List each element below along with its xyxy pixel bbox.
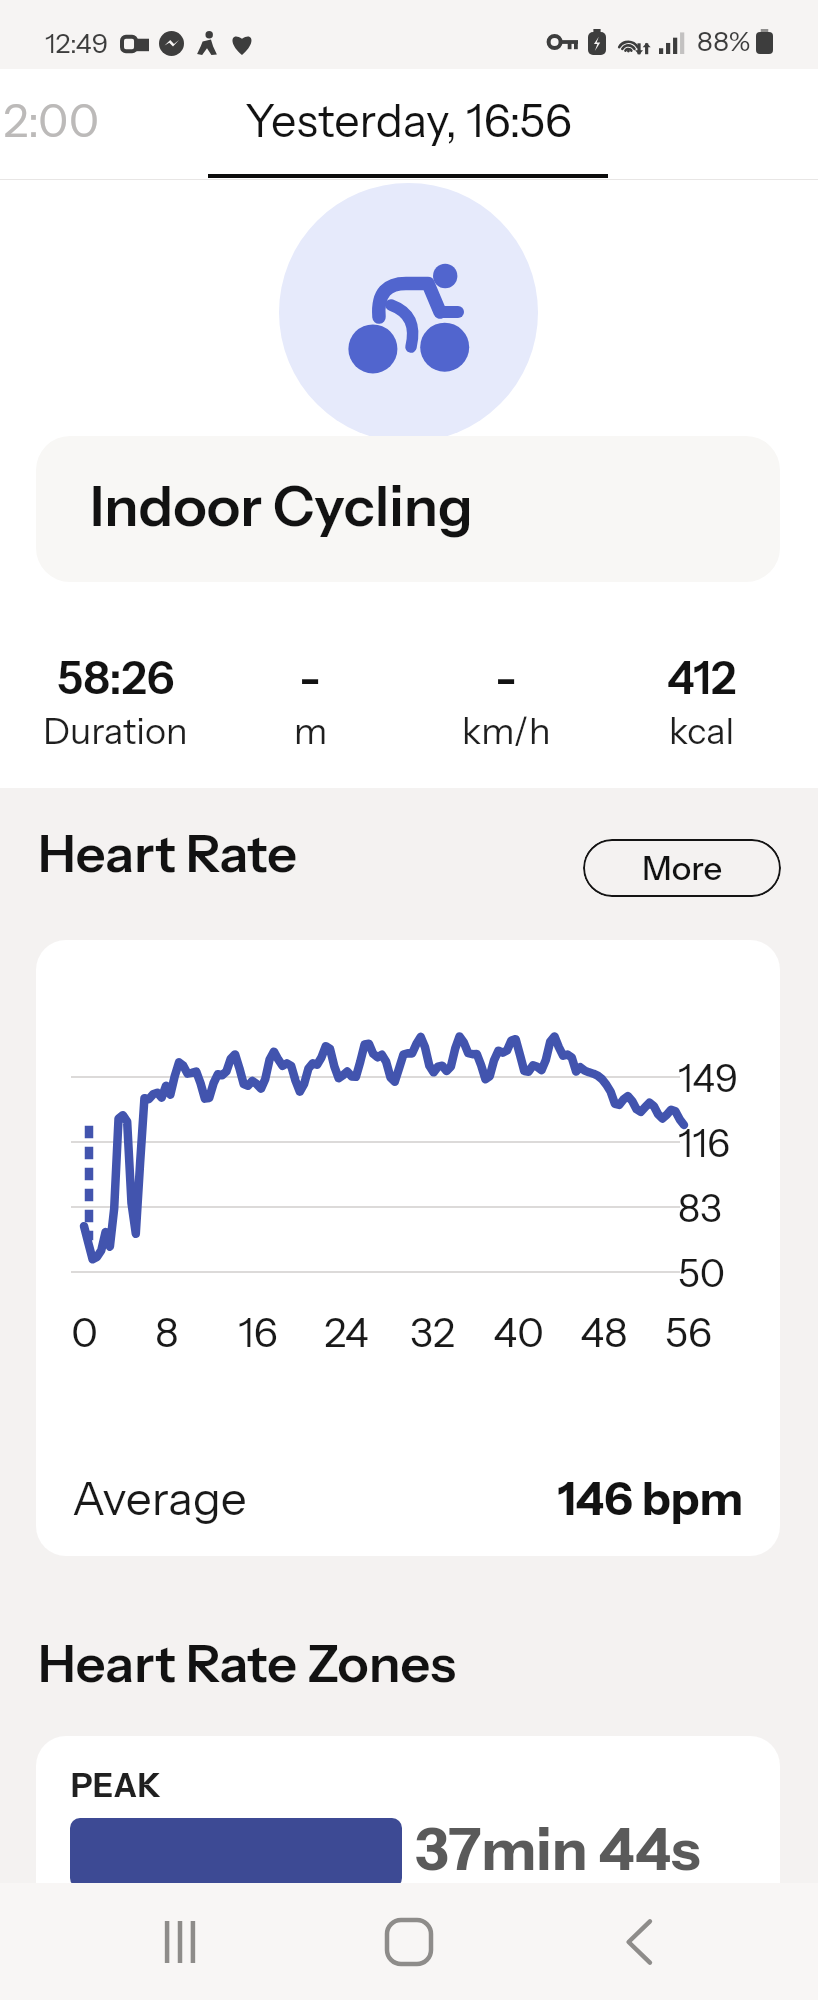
staticText: 40 [493, 1308, 544, 1357]
button[interactable]: Indoor Cycling [36, 436, 780, 582]
staticText: 88% [697, 25, 751, 58]
staticText: 58:26 [57, 650, 175, 705]
staticText: 83 [678, 1185, 722, 1231]
staticText: Heart Rate [38, 822, 297, 885]
staticText: 37min 44s [415, 1814, 701, 1885]
staticText: Heart Rate Zones [38, 1632, 457, 1695]
staticText: 32 [410, 1308, 455, 1357]
staticText: 116 [678, 1120, 731, 1166]
staticText: 56 [665, 1308, 712, 1357]
button[interactable]: Recent apps [130, 1892, 230, 1992]
staticText: Yesterday, 16:56 [245, 93, 572, 148]
button[interactable]: - [213, 650, 408, 753]
staticText: 412 [667, 650, 737, 705]
staticText: 149 [678, 1055, 739, 1101]
staticText: 24 [324, 1308, 369, 1357]
staticText: Average [72, 1470, 247, 1526]
button[interactable]: Yesterday, 16:56 [208, 84, 608, 178]
staticText: PEAK [71, 1766, 162, 1805]
staticText: Duration [43, 709, 188, 753]
button[interactable]: - [408, 650, 604, 753]
staticText: 16 [238, 1308, 278, 1357]
staticText: 0 [71, 1308, 98, 1357]
button[interactable]: More [583, 839, 781, 897]
staticText: m [294, 709, 328, 753]
staticText: kcal [669, 709, 735, 753]
staticText: 8 [155, 1308, 179, 1357]
staticText: 12:00 [0, 93, 99, 148]
staticText: Indoor Cycling [90, 472, 473, 540]
staticText: km/h [462, 709, 551, 753]
staticText: 48 [580, 1308, 628, 1357]
staticText: 50 [678, 1250, 726, 1296]
button[interactable]: Home [359, 1892, 459, 1992]
staticText: 12:49 [45, 27, 109, 60]
staticText: 146 bpm [558, 1470, 744, 1526]
button[interactable]: 412 [604, 650, 800, 753]
button[interactable]: 58:26 [18, 650, 213, 753]
button[interactable]: Back [589, 1892, 689, 1992]
staticText: More [642, 848, 723, 888]
staticText: - [299, 650, 322, 705]
staticText: - [495, 650, 518, 705]
